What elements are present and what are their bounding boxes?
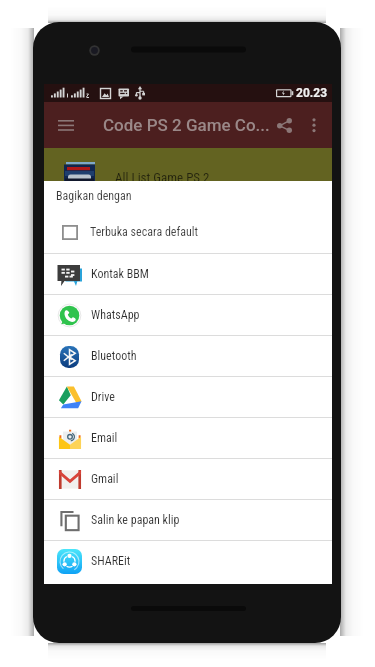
- button[interactable]: Salin ke papan klip: [44, 500, 332, 540]
- staticText: Terbuka secara default: [90, 225, 199, 239]
- button[interactable]: Navigation menu: [50, 102, 82, 148]
- staticText: Bluetooth: [91, 349, 137, 363]
- staticText: 20.23: [296, 86, 328, 100]
- button[interactable]: Gmail: [44, 459, 332, 499]
- staticText: Drive: [91, 390, 115, 404]
- staticText: Email: [91, 431, 118, 445]
- staticText: Kontak BBM: [91, 267, 149, 281]
- staticText: All List Game PS 2: [115, 170, 210, 185]
- staticText: Salin ke papan klip: [91, 513, 180, 527]
- button[interactable]: Drive: [44, 377, 332, 417]
- staticText: Gmail: [91, 472, 119, 486]
- button[interactable]: WhatsApp: [44, 295, 332, 335]
- button[interactable]: Share: [268, 102, 300, 148]
- button[interactable]: Kontak BBM: [44, 254, 332, 294]
- button[interactable]: Terbuka secara default: [44, 211, 332, 253]
- staticText: Code PS 2 Game Co...: [103, 115, 270, 135]
- staticText: WhatsApp: [91, 308, 140, 322]
- button[interactable]: Bluetooth: [44, 336, 332, 376]
- staticText: SHAREit: [91, 554, 131, 568]
- button[interactable]: SHAREit: [44, 541, 332, 581]
- staticText: Bagikan dengan: [56, 189, 132, 203]
- button[interactable]: More options: [300, 102, 328, 148]
- button[interactable]: Email: [44, 418, 332, 458]
